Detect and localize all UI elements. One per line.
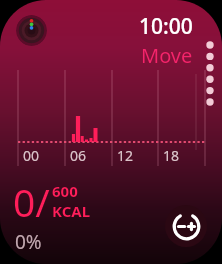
staticText: Move	[141, 42, 193, 69]
staticText: 10:00	[139, 12, 193, 41]
staticText: 0/	[13, 175, 50, 228]
staticText: 0%	[15, 229, 42, 255]
staticText: 600	[52, 181, 78, 201]
button[interactable]: Adjust goal	[165, 205, 207, 247]
staticText: 00	[23, 146, 40, 165]
staticText: 12	[117, 146, 134, 165]
staticText: 18	[163, 146, 180, 165]
button[interactable]: Activity rings	[16, 15, 47, 46]
staticText: 06	[70, 146, 87, 165]
staticText: KCAL	[52, 201, 91, 221]
